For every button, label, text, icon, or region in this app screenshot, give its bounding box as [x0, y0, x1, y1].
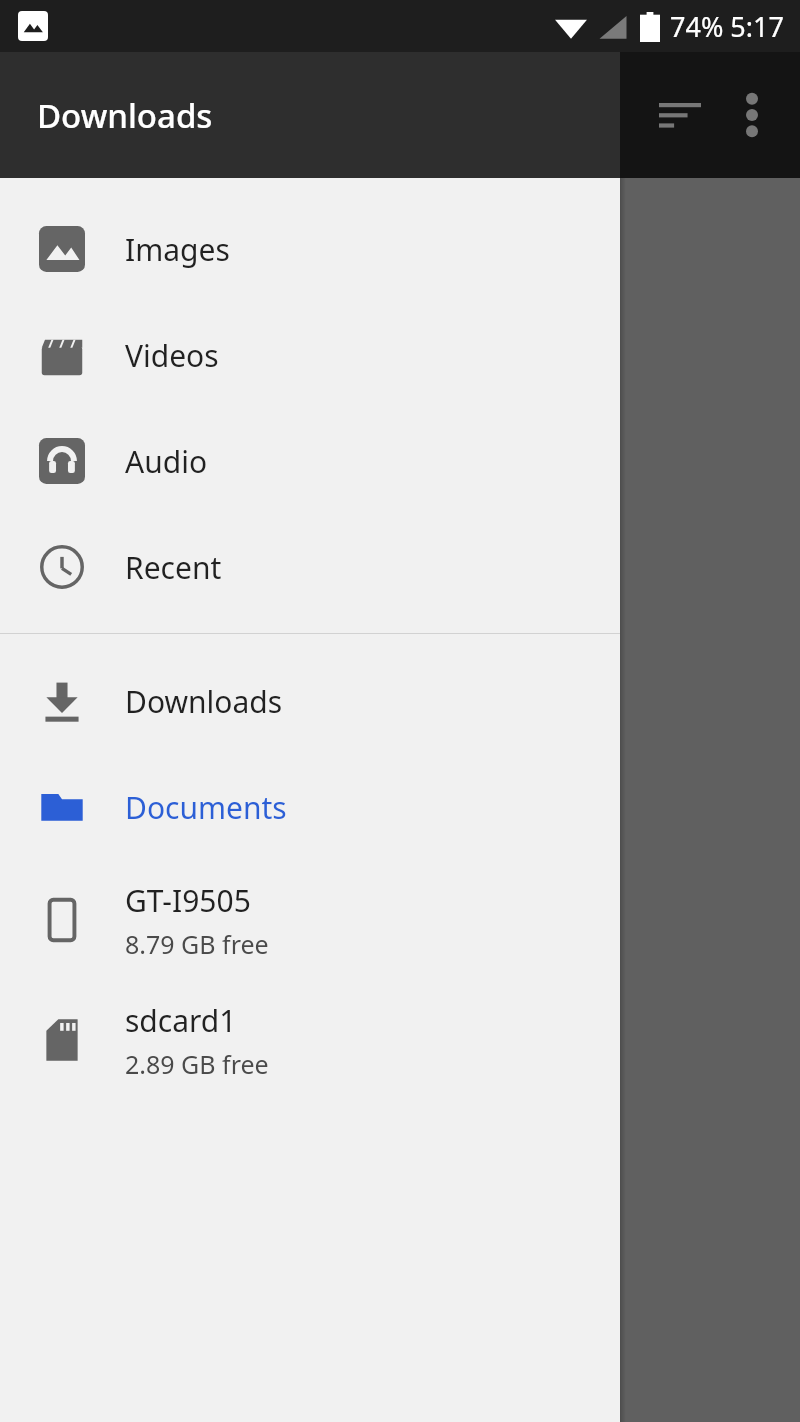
staticText: 2.89 GB free — [125, 1047, 269, 1081]
button[interactable]: Downloads — [0, 648, 620, 754]
staticText: Audio — [125, 441, 208, 482]
staticText: 74% 5:17 — [670, 8, 784, 45]
button[interactable]: sdcard1 — [0, 980, 620, 1100]
button[interactable]: Audio — [0, 408, 620, 514]
staticText: 8.79 GB free — [125, 927, 269, 961]
staticText: Downloads — [37, 93, 213, 138]
staticText: Recent — [125, 547, 222, 588]
button[interactable]: Videos — [0, 302, 620, 408]
staticText: GT-I9505 — [125, 880, 251, 921]
button[interactable]: Images — [0, 196, 620, 302]
staticText: Videos — [125, 335, 219, 376]
staticText: Downloads — [125, 681, 283, 722]
staticText: sdcard1 — [125, 1000, 237, 1041]
button[interactable]: GT-I9505 — [0, 860, 620, 980]
button[interactable]: Documents — [0, 754, 620, 860]
button[interactable]: Recent — [0, 514, 620, 620]
staticText: Documents — [125, 787, 287, 828]
staticText: Images — [125, 229, 230, 270]
button[interactable]: More options — [716, 79, 788, 151]
button[interactable]: Sort — [644, 79, 716, 151]
